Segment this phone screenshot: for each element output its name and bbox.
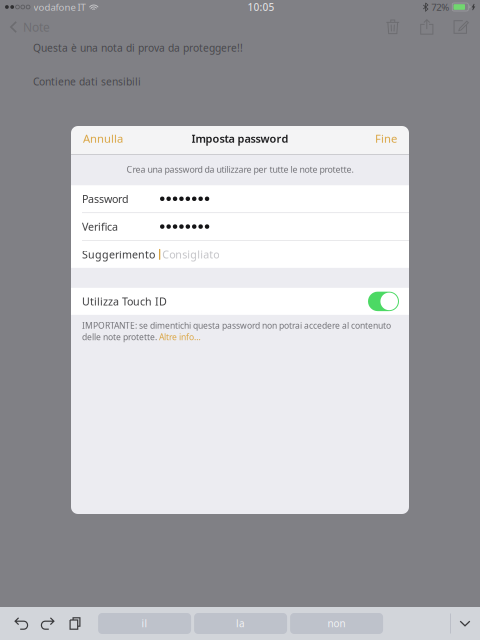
button[interactable]: Incolla [65, 610, 85, 636]
button[interactable]: Note [0, 14, 60, 40]
staticText: Annulla [83, 131, 123, 146]
staticText: la [236, 617, 245, 630]
staticText: Imposta password [191, 131, 288, 146]
button[interactable]: non [290, 613, 383, 634]
button[interactable]: Nuova nota [444, 14, 478, 40]
staticText: 10:05 [247, 0, 274, 14]
button[interactable]: la [194, 613, 287, 634]
staticText: Contiene dati sensibili [33, 75, 141, 88]
button[interactable]: Condividi [410, 14, 444, 40]
staticText: Suggerimento [82, 247, 155, 261]
staticText: Note [23, 19, 50, 35]
staticText: IMPORTANTE: se dimentichi questa passwor… [82, 320, 391, 343]
staticText: Consigliato [162, 247, 219, 261]
staticText: il [142, 617, 148, 630]
staticText: vodafone IT [33, 1, 85, 13]
staticText: 72% [431, 1, 449, 13]
staticText: non [328, 617, 346, 630]
button[interactable]: Annulla [11, 610, 31, 636]
button[interactable]: Fine [365, 124, 409, 152]
button[interactable]: Annulla [71, 124, 133, 152]
button[interactable]: Nascondi tastiera [451, 610, 479, 636]
button[interactable]: Elimina nota [376, 14, 410, 40]
staticText: Crea una password da utilizzare per tutt… [126, 164, 353, 175]
button[interactable]: il [98, 613, 191, 634]
button[interactable]: Utilizza Touch ID [368, 288, 399, 314]
button[interactable]: Ripristina [38, 610, 58, 636]
staticText: Questa è una nota di prova da proteggere… [33, 41, 243, 55]
staticText: Utilizza Touch ID [82, 294, 167, 308]
staticText: Password [82, 192, 129, 206]
staticText: Fine [375, 131, 397, 146]
staticText: Verifica [82, 219, 118, 234]
